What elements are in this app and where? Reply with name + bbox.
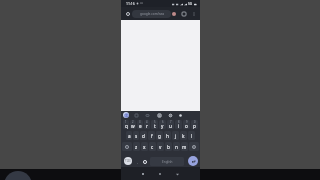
staticText: s [135,133,138,139]
staticText: b [167,144,170,150]
button[interactable]: Backspace [189,142,199,151]
button[interactable]: Shift [122,142,132,151]
button[interactable]: 5 [151,120,158,129]
staticText: n [175,144,178,150]
button[interactable]: k [180,131,187,140]
button[interactable]: 9 [183,120,190,129]
button[interactable]: l [188,131,195,140]
button[interactable]: c [149,142,156,151]
button[interactable]: j [172,131,179,140]
staticText: 11:16 [126,1,135,6]
button[interactable]: More options [191,11,197,17]
button[interactable]: a [126,131,132,140]
button[interactable]: 6 [159,120,166,129]
button[interactable]: Recent apps [173,170,181,178]
button[interactable]: 8 [175,120,182,129]
button[interactable]: GIF [145,113,150,118]
staticText: p [193,123,196,129]
staticText: 2 [132,120,134,124]
staticText: 3 [139,120,141,124]
button[interactable]: Reload page [124,10,131,17]
staticText: x [143,144,146,150]
button[interactable]: b [165,142,172,151]
staticText: k [182,133,185,139]
staticText: 6 [162,120,164,124]
staticText: y [161,123,164,129]
button[interactable]: n [173,142,180,151]
staticText: f [151,133,153,139]
staticText: l [191,133,193,139]
button[interactable]: Back [139,170,147,178]
button[interactable]: g [156,131,163,140]
staticText: 1 [125,120,127,124]
staticText: q [125,123,128,129]
staticText: z [135,144,138,150]
button[interactable]: Clipboard [157,113,162,118]
button[interactable]: Comma [134,158,141,165]
button[interactable]: 7 [167,120,174,129]
staticText: ?123 [125,159,131,163]
button[interactable]: z [133,142,140,151]
staticText: c [151,144,154,150]
button[interactable]: Account [171,11,177,17]
button[interactable]: 1 [123,120,129,129]
button[interactable]: 4 [144,120,150,129]
button[interactable]: d [140,131,147,140]
staticText: j [175,133,177,139]
button[interactable]: Emoji [141,158,148,165]
button[interactable]: Stickers [134,113,139,118]
button[interactable]: Switch tabs [181,11,187,17]
button[interactable]: Voice input [178,113,183,118]
staticText: r [146,123,148,129]
staticText: 5 [154,120,156,124]
staticText: o [185,123,188,129]
button[interactable]: Enter [188,156,198,166]
staticText: e [139,123,142,129]
button[interactable]: s [133,131,139,140]
staticText: h [166,133,169,139]
staticText: English [162,160,173,164]
button[interactable]: 2 [130,120,136,129]
staticText: d [142,133,145,139]
staticText: g [158,133,161,139]
button[interactable]: h [164,131,171,140]
button[interactable]: Home [156,170,164,178]
button[interactable]: Google search [123,112,129,118]
button[interactable]: f [148,131,155,140]
staticText: i [178,123,180,129]
staticText: v [159,144,162,150]
button[interactable]: ?123 [124,157,132,165]
button[interactable]: 3 [137,120,143,129]
button[interactable]: v [157,142,164,151]
staticText: 0 [194,120,196,124]
staticText: google.com/sea [140,12,164,16]
button[interactable]: google.com/sea [132,10,171,18]
staticText: , [137,159,139,165]
staticText: 5G [188,2,193,6]
button[interactable]: English [150,157,184,166]
button[interactable]: 0 [191,120,198,129]
staticText: 9 [186,120,188,124]
button[interactable]: x [141,142,148,151]
staticText: 4 [146,120,148,124]
staticText: a [128,133,131,139]
button[interactable]: m [181,142,188,151]
staticText: m [182,144,187,150]
staticText: 7 [170,120,172,124]
staticText: u [169,123,172,129]
button[interactable]: Settings [168,113,173,118]
staticText: 8 [178,120,180,124]
staticText: t [154,123,156,129]
staticText: w [131,123,135,129]
